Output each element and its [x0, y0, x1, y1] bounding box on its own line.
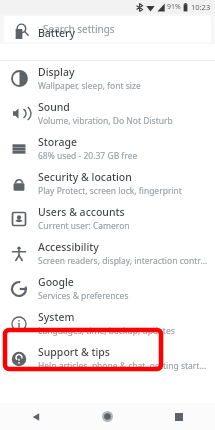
button[interactable]: System: [0, 306, 215, 341]
staticText: Play Protect, screen lock, fingerprint: [38, 185, 182, 197]
staticText: Wallpaper, sleep, font size: [38, 80, 141, 92]
staticText: System: [38, 310, 75, 324]
button[interactable]: Back: [0, 403, 71, 430]
staticText: Search settings: [43, 22, 115, 36]
staticText: Languages, time, backup, updates: [38, 325, 175, 337]
button[interactable]: Google: [0, 271, 215, 306]
button[interactable]: Battery: [0, 26, 215, 42]
staticText: Accessibility: [38, 240, 99, 254]
staticText: 10:23: [191, 2, 211, 12]
staticText: Screen readers, display, interaction con…: [38, 255, 209, 267]
staticText: Help articles, phone & chat, getting sta…: [38, 360, 209, 372]
staticText: Storage: [38, 135, 77, 149]
button[interactable]: Storage: [0, 131, 215, 166]
button[interactable]: Sound: [0, 96, 215, 131]
staticText: Volume, vibration, Do Not Disturb: [38, 115, 173, 127]
staticText: 91%: [167, 2, 181, 12]
button[interactable]: Support & tips: [0, 341, 215, 376]
button[interactable]: Security & location: [0, 166, 215, 201]
staticText: Support & tips: [38, 345, 110, 359]
staticText: Battery: [38, 26, 75, 40]
staticText: Users & accounts: [38, 205, 125, 219]
staticText: Services & preferences: [38, 290, 129, 302]
staticText: Google: [38, 275, 74, 289]
button[interactable]: Search settings: [4, 16, 211, 42]
button[interactable]: Recent apps: [143, 403, 215, 430]
button[interactable]: Home: [71, 403, 143, 430]
button[interactable]: Accessibility: [0, 236, 215, 271]
button[interactable]: Display: [0, 61, 215, 96]
button[interactable]: Users & accounts: [0, 201, 215, 236]
staticText: Sound: [38, 100, 70, 114]
staticText: Security & location: [38, 170, 132, 184]
staticText: 68% used - 20.37 GB free: [38, 150, 138, 162]
staticText: Display: [38, 65, 75, 79]
staticText: Current user: Cameron: [38, 220, 130, 232]
